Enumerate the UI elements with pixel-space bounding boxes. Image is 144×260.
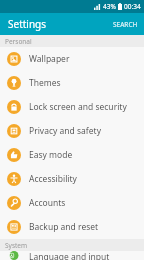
- staticText: Accounts: [29, 197, 66, 209]
- button[interactable]: Accounts: [0, 191, 144, 215]
- button[interactable]: SEARCH: [107, 15, 144, 34]
- other: Accessibility: [7, 172, 21, 186]
- button[interactable]: Easy mode: [0, 143, 144, 167]
- button[interactable]: Wallpaper: [0, 47, 144, 71]
- staticText: Lock screen and security: [29, 101, 127, 113]
- button[interactable]: Language and input: [0, 251, 144, 260]
- other: Accounts: [7, 196, 21, 210]
- other: Language and input: [7, 251, 21, 260]
- staticText: Settings: [8, 17, 47, 31]
- other: Lock screen and security: [7, 100, 21, 114]
- button[interactable]: Backup and reset: [0, 215, 144, 239]
- staticText: Privacy and safety: [29, 125, 101, 137]
- staticText: System: [5, 241, 28, 250]
- staticText: Language and input: [29, 251, 110, 260]
- staticText: Wallpaper: [29, 53, 70, 65]
- staticText: 43%: [103, 2, 116, 11]
- other: Privacy and safety: [7, 124, 21, 138]
- staticText: Backup and reset: [29, 221, 99, 233]
- staticText: Personal: [5, 37, 32, 46]
- other: Backup and reset: [7, 220, 21, 234]
- other: Easy mode: [7, 148, 21, 162]
- button[interactable]: Privacy and safety: [0, 119, 144, 143]
- button[interactable]: Accessibility: [0, 167, 144, 191]
- staticText: Easy mode: [29, 149, 73, 161]
- staticText: Themes: [29, 77, 61, 89]
- other: Wallpaper: [7, 52, 21, 66]
- staticText: SEARCH: [113, 20, 138, 29]
- other: Themes: [7, 76, 21, 90]
- button[interactable]: Themes: [0, 71, 144, 95]
- button[interactable]: Lock screen and security: [0, 95, 144, 119]
- staticText: 00:34: [124, 2, 141, 11]
- staticText: Accessibility: [29, 173, 77, 185]
